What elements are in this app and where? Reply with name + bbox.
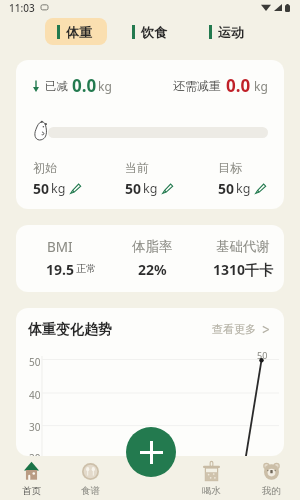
button[interactable]: Profile xyxy=(241,456,300,500)
button[interactable]: Edit 当前 xyxy=(125,179,174,198)
staticText: BMI xyxy=(47,238,73,256)
staticText: 19.5 xyxy=(46,260,74,279)
staticText: 50 xyxy=(257,349,268,361)
staticText: 30 xyxy=(29,420,41,434)
button[interactable]: BMI xyxy=(16,238,105,257)
staticText: 运动 xyxy=(218,24,244,40)
button[interactable]: 基础代谢 xyxy=(198,238,284,257)
staticText: 目标 xyxy=(218,160,242,175)
button[interactable]: Water xyxy=(181,456,241,500)
staticText: 我的 xyxy=(262,485,281,497)
staticText: 喝水 xyxy=(202,485,221,497)
button[interactable]: Recipes xyxy=(60,456,120,500)
staticText: 40 xyxy=(29,388,41,402)
staticText: 还需减重 xyxy=(173,78,221,93)
staticText: 已减 xyxy=(45,79,68,93)
button[interactable]: 运动 xyxy=(197,18,259,45)
button[interactable]: 体重 xyxy=(45,18,107,45)
staticText: kg xyxy=(254,78,268,94)
button[interactable]: 查看更多 xyxy=(212,322,270,336)
staticText: 正常 xyxy=(76,262,96,275)
staticText: 0.0 xyxy=(226,74,251,97)
staticText: 50 xyxy=(218,179,235,198)
staticText: kg xyxy=(51,180,66,197)
staticText: 体重变化趋势 xyxy=(28,321,112,339)
staticText: 查看更多 xyxy=(212,322,256,336)
staticText: 体脂率 xyxy=(132,238,173,255)
staticText: 饮食 xyxy=(141,24,167,40)
staticText: 体重 xyxy=(66,24,92,40)
button[interactable]: 体脂率 xyxy=(107,238,197,257)
button[interactable]: 饮食 xyxy=(120,18,182,45)
staticText: 50 xyxy=(29,355,41,369)
staticText: 食谱 xyxy=(81,485,100,497)
button[interactable]: Edit 初始 xyxy=(33,179,82,198)
button[interactable]: Add record xyxy=(126,427,176,477)
staticText: 50 xyxy=(33,179,50,198)
staticText: 50 xyxy=(125,179,142,198)
staticText: 0.0 xyxy=(72,74,97,97)
staticText: kg xyxy=(98,78,112,94)
staticText: kg xyxy=(236,180,251,197)
staticText: 当前 xyxy=(125,160,149,175)
button[interactable]: Home xyxy=(1,456,61,500)
staticText: 1310千卡 xyxy=(213,260,274,279)
staticText: kg xyxy=(143,180,158,197)
staticText: 基础代谢 xyxy=(216,238,270,255)
staticText: 20 xyxy=(29,451,41,456)
button[interactable]: Edit 目标 xyxy=(218,179,267,198)
staticText: 22% xyxy=(138,260,167,279)
staticText: 初始 xyxy=(33,160,57,175)
staticText: 11:03 xyxy=(9,1,35,15)
staticText: 首页 xyxy=(22,485,41,497)
